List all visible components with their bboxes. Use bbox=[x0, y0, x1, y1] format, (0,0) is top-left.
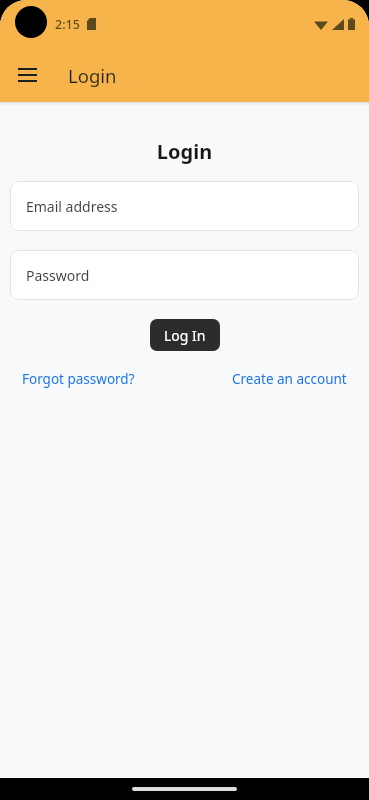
button[interactable]: Open navigation menu bbox=[10, 58, 44, 92]
staticText: 2:15 bbox=[55, 16, 80, 33]
staticText: Email address bbox=[26, 197, 118, 216]
button[interactable]: Create an account bbox=[232, 370, 347, 388]
button[interactable]: Email address bbox=[10, 181, 359, 231]
staticText: Log In bbox=[164, 326, 206, 345]
staticText: Password bbox=[26, 266, 90, 285]
button[interactable]: Password bbox=[10, 250, 359, 300]
staticText: Login bbox=[0, 138, 369, 165]
button[interactable]: Forgot password? bbox=[22, 370, 135, 388]
staticText: Login bbox=[68, 63, 117, 88]
button[interactable]: Log In bbox=[150, 319, 220, 351]
